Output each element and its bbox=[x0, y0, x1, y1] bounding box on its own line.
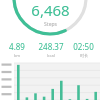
staticText: 02:50 bbox=[73, 41, 94, 52]
staticText: km bbox=[14, 53, 20, 58]
button[interactable]: Step goal progress ring bbox=[0, 0, 100, 40]
other: Weekly step bar chart bbox=[0, 61, 100, 100]
button[interactable]: 248.37 bbox=[34, 41, 67, 58]
staticText: Steps bbox=[44, 21, 57, 28]
staticText: 248.37 bbox=[38, 41, 64, 52]
button[interactable]: Weekly step bar chart bbox=[0, 61, 100, 100]
button[interactable]: 02:50 bbox=[67, 41, 100, 58]
button[interactable]: 4.89 bbox=[0, 41, 33, 58]
staticText: kcal bbox=[47, 53, 55, 58]
other: Step goal progress ring bbox=[0, 0, 100, 40]
staticText: 6,468 bbox=[31, 0, 70, 20]
staticText: 4.89 bbox=[9, 41, 25, 52]
staticText: 时长 bbox=[80, 53, 88, 58]
